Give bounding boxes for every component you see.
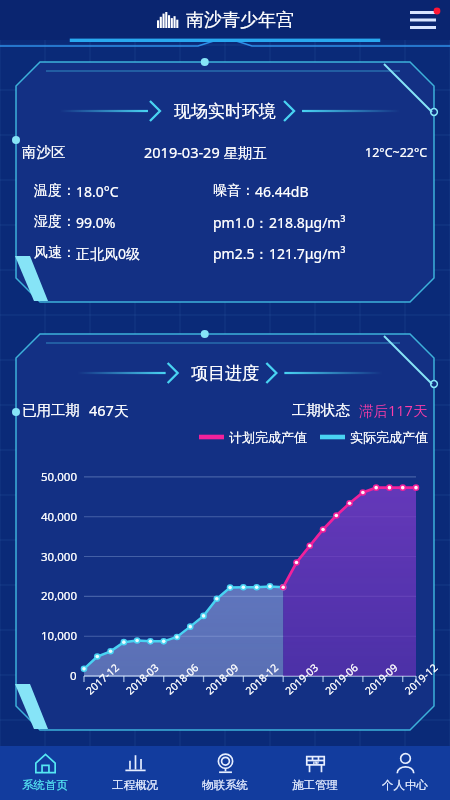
staticText: 项目进度 <box>191 363 259 384</box>
staticText: 正北风0级 <box>76 244 141 263</box>
staticText: 467天 <box>89 400 129 420</box>
staticText: 计划完成产值 <box>229 429 307 445</box>
staticText: 噪音： <box>213 182 255 200</box>
staticText: 99.0% <box>76 213 116 232</box>
staticText: 湿度： <box>34 213 76 231</box>
staticText: 个人中心 <box>382 778 428 792</box>
staticText: pm1.0： <box>213 213 269 232</box>
staticText: 218.8μg/m³ <box>269 213 346 232</box>
staticText: 施工管理 <box>292 778 338 792</box>
button[interactable]: 施工管理 <box>270 746 360 800</box>
staticText: 12°C~22°C <box>365 144 428 161</box>
staticText: 18.0°C <box>76 182 119 201</box>
staticText: 南沙青少年宫 <box>186 9 294 32</box>
staticText: 系统首页 <box>22 778 68 792</box>
staticText: 工期状态 <box>292 401 350 419</box>
button[interactable]: 系统首页 <box>0 746 90 800</box>
staticText: 现场实时环境 <box>174 101 276 122</box>
button[interactable]: 工程概况 <box>90 746 180 800</box>
staticText: 南沙区 <box>22 143 66 161</box>
staticText: 风速： <box>34 244 76 262</box>
staticText: 实际完成产值 <box>350 429 428 445</box>
staticText: 已用工期 <box>22 401 80 419</box>
staticText: pm2.5： <box>213 244 269 263</box>
staticText: 46.44dB <box>255 182 309 201</box>
button[interactable]: 个人中心 <box>360 746 450 800</box>
staticText: 2019-03-29 星期五 <box>144 142 267 162</box>
staticText: 物联系统 <box>202 778 248 792</box>
staticText: 121.7μg/m³ <box>269 244 346 263</box>
button[interactable]: Menu <box>404 0 444 40</box>
staticText: 工程概况 <box>112 778 158 792</box>
staticText: 滞后117天 <box>359 400 428 420</box>
button[interactable]: 物联系统 <box>180 746 270 800</box>
staticText: 温度： <box>34 182 76 200</box>
